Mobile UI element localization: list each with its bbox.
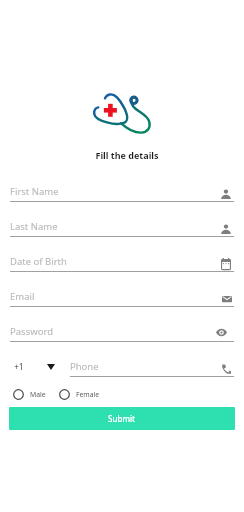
button[interactable]: Phone [70,342,234,377]
staticText: Female [76,390,100,399]
other: Calendar [221,258,231,268]
staticText: +1 [14,361,24,373]
staticText: Phone [70,360,99,373]
button[interactable]: Email [10,272,234,307]
button[interactable]: Date of Birth [10,237,234,272]
other: Call [221,364,231,374]
button[interactable]: Last Name [10,202,234,237]
other: Show password [216,327,227,338]
button[interactable]: First Name [10,167,234,202]
staticText: Date of Birth [10,255,67,268]
other: Name [221,189,231,199]
other: Name [221,224,231,234]
staticText: Male [30,390,46,399]
button[interactable]: Country code [10,342,70,377]
staticText: Last Name [10,220,58,233]
button[interactable]: Password [10,307,234,342]
other: Email [222,294,232,304]
staticText: Password [10,325,53,338]
button[interactable]: Female [59,389,100,400]
staticText: Submit [108,413,136,424]
staticText: First Name [10,185,59,198]
staticText: Email [10,290,35,303]
button[interactable]: Male [13,389,46,400]
button[interactable]: Submit [9,407,235,430]
staticText: Fill the details [5,149,244,161]
